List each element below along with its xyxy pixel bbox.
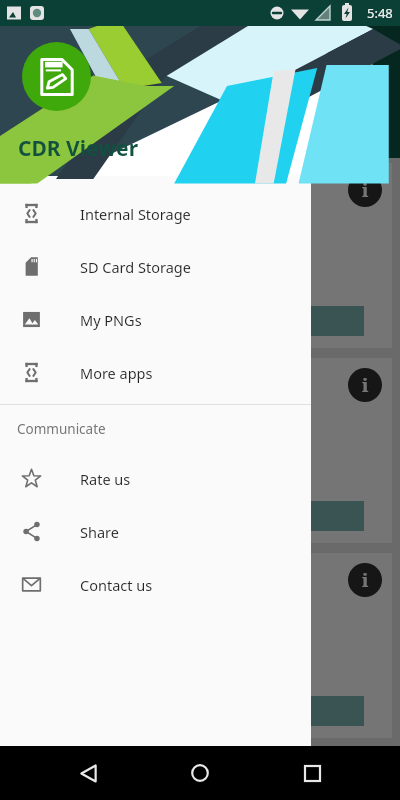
staticText: 5:48 — [367, 4, 393, 22]
staticText: More apps — [80, 363, 153, 383]
staticText: i — [362, 178, 369, 203]
staticText: Rate us — [80, 469, 131, 489]
button[interactable]: Rate us — [0, 452, 311, 505]
button[interactable]: More apps — [0, 346, 311, 399]
staticText: Contact us — [80, 575, 153, 595]
staticText: f — [364, 30, 378, 76]
staticText: Communicate — [17, 420, 106, 438]
staticText: i — [362, 568, 369, 593]
staticText: CDR Viewer — [18, 134, 139, 163]
staticText: My PNGs — [80, 310, 142, 330]
staticText: Recent CDRs — [16, 118, 129, 144]
staticText: corel document — [48, 484, 138, 500]
button[interactable]: Back — [64, 749, 112, 797]
staticText: Internal Storage — [80, 204, 191, 224]
staticText: IMG_5570.CDR — [48, 312, 145, 331]
button[interactable]: My PNGs — [0, 293, 311, 346]
button[interactable]: Contact us — [0, 558, 311, 611]
button[interactable]: Home — [176, 749, 224, 797]
staticText: SD Card Storage — [80, 257, 191, 277]
button[interactable]: Recent apps — [288, 749, 336, 797]
button[interactable]: Share — [0, 505, 311, 558]
button[interactable]: SD Card Storage — [0, 240, 311, 293]
staticText: i — [362, 373, 369, 398]
staticText: Share — [80, 522, 119, 542]
button[interactable]: Internal Storage — [0, 187, 311, 240]
